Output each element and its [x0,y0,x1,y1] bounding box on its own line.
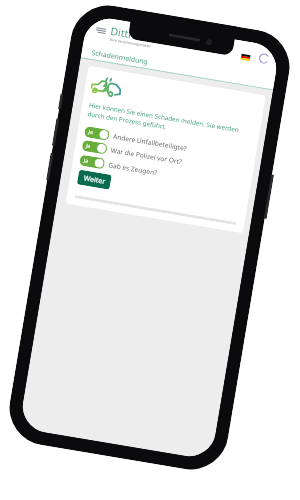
button[interactable]: Dark mode [257,52,271,65]
staticText: Ja [83,157,89,165]
button[interactable]: Language [239,51,251,62]
button[interactable]: Dittmann [109,24,158,45]
staticText: War die Polizei vor Ort? [110,145,183,166]
button[interactable]: Weiter [77,169,112,190]
button[interactable]: Menu [91,23,110,39]
staticText: Andere Unfallbeteiligte? [112,132,188,153]
button[interactable]: Ja [84,126,243,163]
staticText: Ihre Versicherungsmakler [110,37,152,49]
staticText: Gab es Zeugen? [108,160,158,177]
staticText: Dittmann [109,24,158,45]
button[interactable]: Ja [79,154,238,192]
staticText: Hier können Sie einen Schaden melden. Si… [87,100,257,146]
button[interactable]: Ja [81,140,241,177]
staticText: Ja [88,128,94,136]
staticText: Weiter [83,173,106,187]
staticText: Schadenmeldung [91,48,149,66]
staticText: Ja [86,142,92,150]
